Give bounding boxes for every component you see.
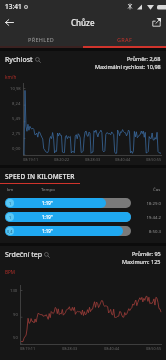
staticText: 08:50:55 [146, 157, 162, 162]
staticText: 8:50.3 [137, 228, 161, 234]
staticText: 8,24 [12, 101, 21, 107]
staticText: 08:19:11 [23, 157, 39, 162]
staticText: 1:19" [42, 228, 53, 234]
staticText: 08:40:44 [115, 157, 131, 162]
staticText: km/h [5, 74, 17, 80]
staticText: 08:50:55 [146, 346, 162, 351]
staticText: 08:28:33 [85, 157, 101, 162]
staticText: SPEED IN KILOMETER [5, 172, 75, 181]
staticText: 0,4 [7, 229, 13, 234]
staticText: 2,75 [12, 131, 21, 137]
staticText: Rychlost [5, 55, 33, 65]
staticText: Průměr: 95 [132, 250, 161, 257]
staticText: 18:29.0 [137, 200, 161, 206]
staticText: 13:41 [5, 2, 22, 11]
button[interactable]: Export [147, 13, 166, 32]
button[interactable]: PŘEHLED [0, 32, 83, 46]
staticText: 08:20:22 [54, 157, 70, 162]
button[interactable]: 1 [0, 196, 166, 210]
staticText: 50 [13, 335, 18, 341]
staticText: Srdeční tep [5, 250, 42, 260]
staticText: 08:19:11 [20, 346, 36, 351]
button[interactable]: 1 [0, 210, 166, 224]
staticText: 0,00 [12, 146, 21, 152]
staticText: 1 [9, 201, 12, 206]
staticText: 10,98 [10, 86, 21, 92]
staticText: 1:19" [42, 200, 53, 206]
staticText: 90 [13, 312, 18, 318]
staticText: Tempo [41, 186, 55, 192]
staticText: PŘEHLED [28, 36, 55, 43]
staticText: 1 [9, 215, 12, 220]
staticText: Maximum: 125 [122, 258, 161, 265]
staticText: Chůze [71, 17, 95, 28]
staticText: 5,49 [12, 116, 21, 122]
staticText: Čas [153, 186, 161, 192]
staticText: 19:44.2 [137, 214, 161, 220]
staticText: Průměr: 2,68 [127, 55, 161, 62]
staticText: 08:28:33 [62, 346, 78, 351]
staticText: 08:40:44 [104, 346, 120, 351]
staticText: Maximální rychlost: 10,98 [95, 63, 161, 70]
button[interactable]: 0,4 [0, 224, 166, 238]
staticText: 130 [10, 288, 18, 294]
staticText: km [7, 186, 14, 192]
staticText: 1:19" [42, 214, 53, 220]
button[interactable]: GRAF [83, 32, 166, 46]
staticText: BPM [5, 269, 15, 275]
staticText: GRAF [117, 36, 133, 43]
button[interactable]: Back [0, 13, 19, 32]
